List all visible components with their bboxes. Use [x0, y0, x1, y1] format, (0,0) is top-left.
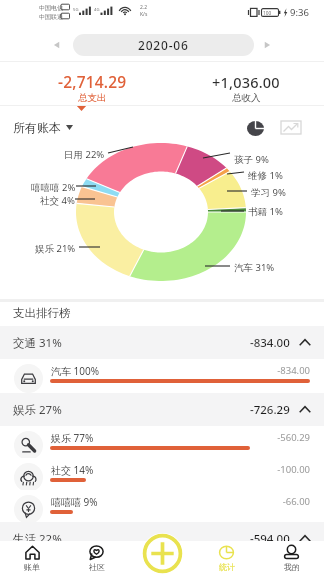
staticText: 嘻嘻嘻 2%: [31, 181, 76, 194]
button[interactable]: 统计: [194, 541, 259, 576]
staticText: -726.29: [250, 402, 290, 418]
staticText: K/s: [140, 11, 148, 18]
button[interactable]: +1,036.00: [164, 72, 324, 104]
staticText: 9:36: [290, 6, 309, 19]
staticText: 汽车 100%: [51, 364, 100, 378]
staticText: -2,714.29: [58, 71, 127, 92]
staticText: 统计: [219, 562, 235, 572]
staticText: 社交 4%: [40, 194, 75, 207]
button[interactable]: Add record: [142, 533, 183, 574]
button[interactable]: Next month: [260, 38, 274, 52]
button[interactable]: 2020-06: [73, 34, 254, 56]
staticText: -834.00: [250, 335, 290, 351]
staticText: -834.00: [238, 364, 310, 377]
staticText: 社交 14%: [51, 463, 94, 477]
staticText: 总支出: [78, 92, 107, 104]
staticText: 4G: [94, 7, 100, 13]
button[interactable]: 社区: [64, 541, 129, 576]
staticText: 支出排行榜: [13, 306, 71, 320]
staticText: 学习 9%: [251, 186, 286, 199]
staticText: 娱乐 27%: [13, 402, 62, 418]
button[interactable]: 交通 31%: [0, 326, 324, 359]
staticText: 娱乐 77%: [51, 431, 94, 445]
staticText: 孩子 9%: [234, 153, 269, 166]
button[interactable]: 娱乐 77%: [0, 426, 324, 459]
staticText: -66.00: [238, 495, 310, 508]
button[interactable]: Previous month: [50, 38, 64, 52]
staticText: 所有账本: [13, 120, 61, 135]
staticText: -100.00: [238, 463, 310, 476]
staticText: 账单: [24, 562, 40, 572]
staticText: 中国联通: [39, 13, 63, 21]
staticText: 汽车 31%: [234, 261, 275, 274]
staticText: 社区: [89, 562, 105, 572]
button[interactable]: 所有账本: [13, 120, 73, 135]
staticText: 日用 22%: [64, 148, 105, 161]
staticText: 中国电信: [39, 4, 63, 12]
staticText: 5G: [73, 7, 79, 13]
staticText: 维修 1%: [248, 169, 283, 182]
staticText: 总收入: [232, 92, 261, 104]
staticText: 100: [263, 10, 272, 17]
staticText: 娱乐 21%: [35, 242, 76, 255]
staticText: +1,036.00: [212, 72, 280, 92]
button[interactable]: Line chart view: [280, 119, 302, 135]
staticText: 生活 22%: [13, 531, 62, 547]
button[interactable]: 娱乐 27%: [0, 393, 324, 426]
staticText: 2020-06: [138, 37, 189, 53]
staticText: 书籍 1%: [248, 205, 283, 218]
button[interactable]: Pie chart view: [246, 119, 264, 137]
staticText: 交通 31%: [13, 335, 62, 351]
staticText: 嘻嘻嘻 9%: [51, 495, 98, 509]
staticText: 我的: [284, 562, 300, 572]
staticText: -560.29: [238, 431, 310, 444]
staticText: 2.2: [140, 4, 148, 11]
button[interactable]: 嘻嘻嘻 9%: [0, 490, 324, 523]
staticText: -594.00: [250, 531, 290, 547]
button[interactable]: 汽车 100%: [0, 359, 324, 392]
button[interactable]: 生活 22%: [0, 522, 324, 555]
button[interactable]: -2,714.29: [2, 71, 182, 104]
button[interactable]: 社交 14%: [0, 458, 324, 491]
button[interactable]: 账单: [0, 541, 64, 576]
button[interactable]: 我的: [259, 541, 324, 576]
